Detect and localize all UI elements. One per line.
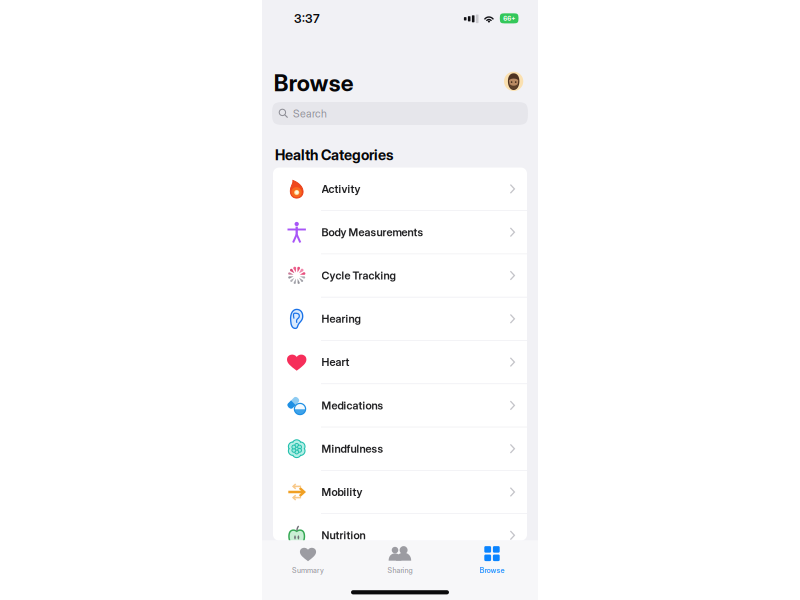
- staticText: Hearing: [322, 312, 361, 325]
- button[interactable]: Nutrition: [273, 514, 527, 557]
- staticText: Summary: [292, 566, 324, 575]
- staticText: 3:37: [294, 11, 320, 26]
- staticText: 66+: [503, 14, 515, 22]
- staticText: Sharing: [387, 566, 412, 575]
- button[interactable]: Cycle Tracking: [273, 254, 527, 297]
- button[interactable]: Mobility: [273, 471, 527, 513]
- staticText: Search: [293, 107, 327, 120]
- staticText: Cycle Tracking: [322, 269, 396, 282]
- staticText: Medications: [322, 399, 384, 412]
- button[interactable]: Browse: [446, 541, 538, 600]
- button[interactable]: Heart: [273, 341, 527, 383]
- button[interactable]: Sharing: [354, 541, 446, 600]
- button[interactable]: Search: [272, 102, 528, 125]
- button[interactable]: Body Measurements: [273, 211, 527, 253]
- staticText: Body Measurements: [322, 226, 424, 239]
- staticText: Mobility: [322, 485, 363, 499]
- button[interactable]: Activity: [273, 168, 527, 210]
- staticText: Activity: [322, 182, 361, 195]
- staticText: Heart: [322, 355, 350, 369]
- staticText: Health Categories: [275, 146, 393, 164]
- button[interactable]: Hearing: [273, 297, 527, 340]
- staticText: Nutrition: [322, 529, 366, 542]
- staticText: Mindfulness: [322, 442, 384, 455]
- button[interactable]: Medications: [273, 384, 527, 427]
- staticText: Browse: [274, 69, 354, 97]
- button[interactable]: Summary: [262, 541, 354, 600]
- button[interactable]: Profile: [504, 72, 523, 91]
- button[interactable]: Mindfulness: [273, 427, 527, 470]
- staticText: Browse: [479, 566, 504, 575]
